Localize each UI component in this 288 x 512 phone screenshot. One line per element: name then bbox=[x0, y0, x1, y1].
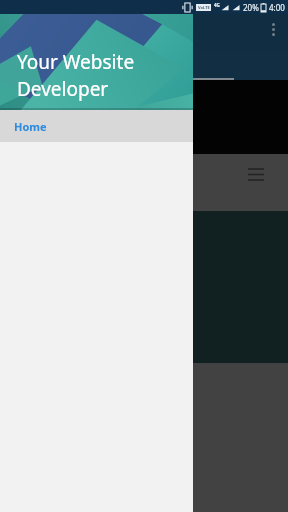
staticText: Home bbox=[14, 119, 47, 134]
staticText: 4G bbox=[214, 2, 220, 8]
button[interactable]: CONTACT bbox=[116, 58, 172, 73]
staticText: Developer bbox=[17, 76, 109, 102]
staticText: 4:00 bbox=[269, 2, 285, 13]
button[interactable]: More options bbox=[264, 20, 282, 38]
staticText: Your Website bbox=[17, 49, 135, 75]
staticText: 961-985-9885 | bbox=[4, 86, 79, 100]
staticText: VoLTE bbox=[198, 5, 210, 10]
button[interactable]: Menu bbox=[246, 164, 266, 184]
button[interactable]: Your Website bbox=[0, 0, 193, 110]
staticText: 20% bbox=[243, 2, 259, 13]
button[interactable]: Home bbox=[0, 110, 193, 142]
